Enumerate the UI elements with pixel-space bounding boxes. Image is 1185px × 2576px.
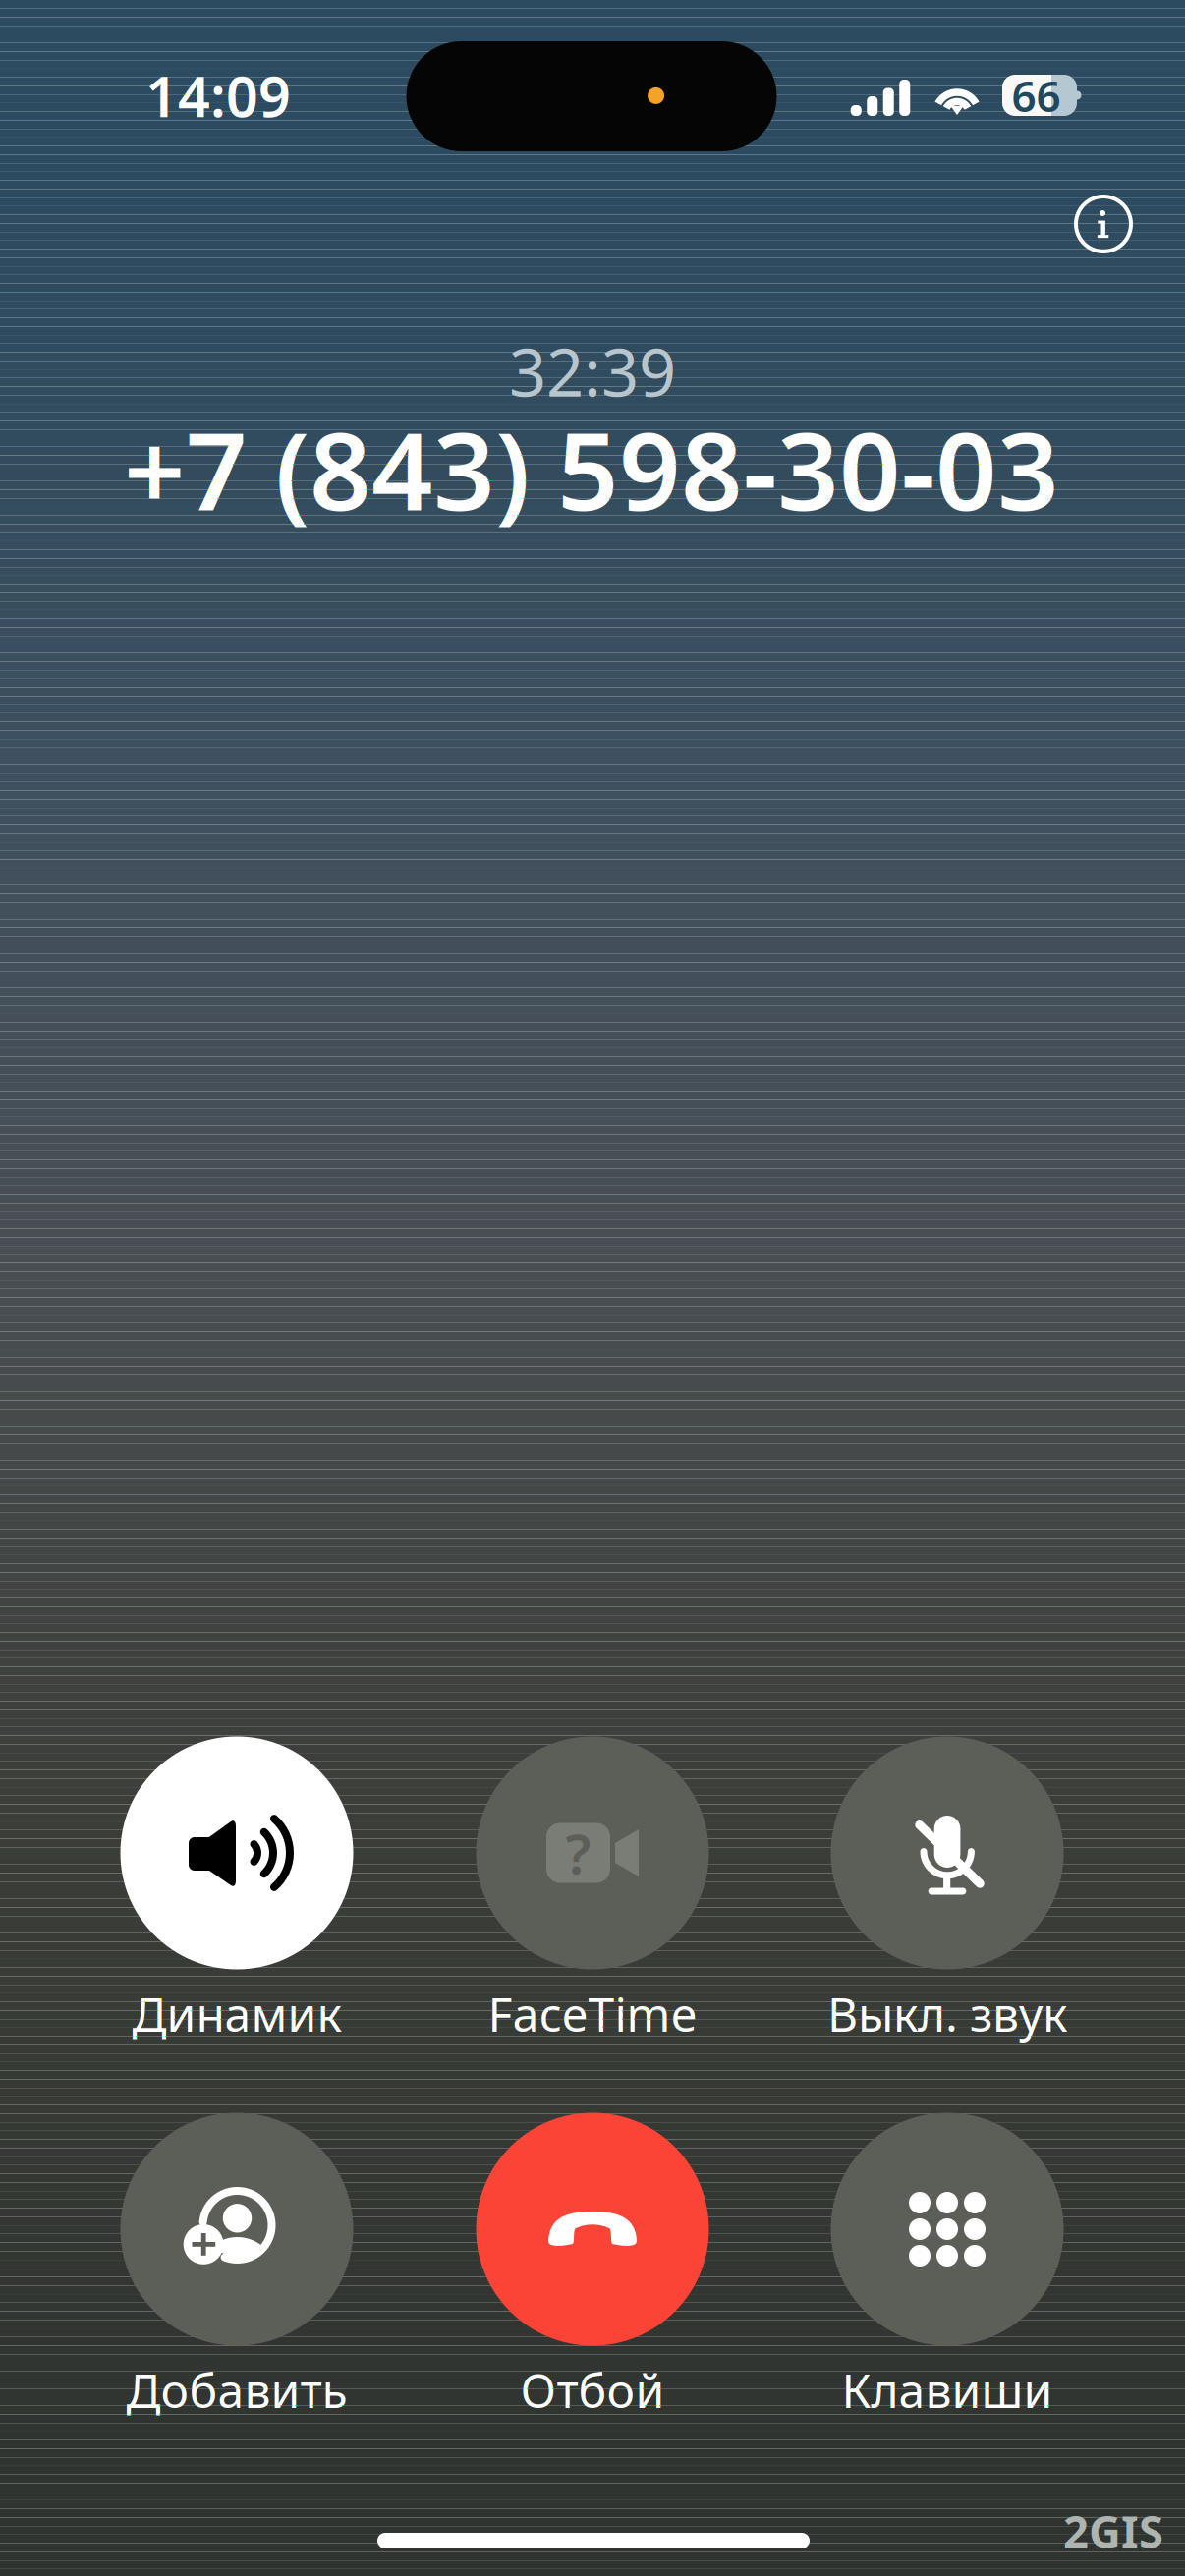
staticText: 2GIS bbox=[1063, 2501, 1163, 2560]
staticText: Динамик bbox=[132, 1982, 341, 2045]
staticText: 66 bbox=[1012, 67, 1061, 124]
staticText: Выкл. звук bbox=[827, 1982, 1067, 2045]
staticText: 14:09 bbox=[145, 58, 291, 133]
button[interactable]: Отбой bbox=[421, 2113, 764, 2420]
staticText: FaceTime bbox=[488, 1982, 697, 2045]
button[interactable]: Выкл. звук bbox=[775, 1736, 1119, 2044]
button[interactable]: Клавиши bbox=[775, 2113, 1119, 2420]
button[interactable]: Call info bbox=[1056, 177, 1151, 271]
staticText: Отбой bbox=[520, 2358, 665, 2421]
button[interactable]: Добавить bbox=[65, 2113, 409, 2420]
button[interactable]: ? bbox=[421, 1736, 764, 2044]
staticText: ? bbox=[565, 1816, 591, 1889]
button[interactable]: Динамик bbox=[65, 1736, 409, 2044]
staticText: Клавиши bbox=[842, 2358, 1053, 2421]
staticText: Добавить bbox=[126, 2358, 347, 2421]
staticText: 32:39 bbox=[509, 328, 676, 415]
staticText: +7 (843) 598-30-03 bbox=[124, 397, 1059, 540]
